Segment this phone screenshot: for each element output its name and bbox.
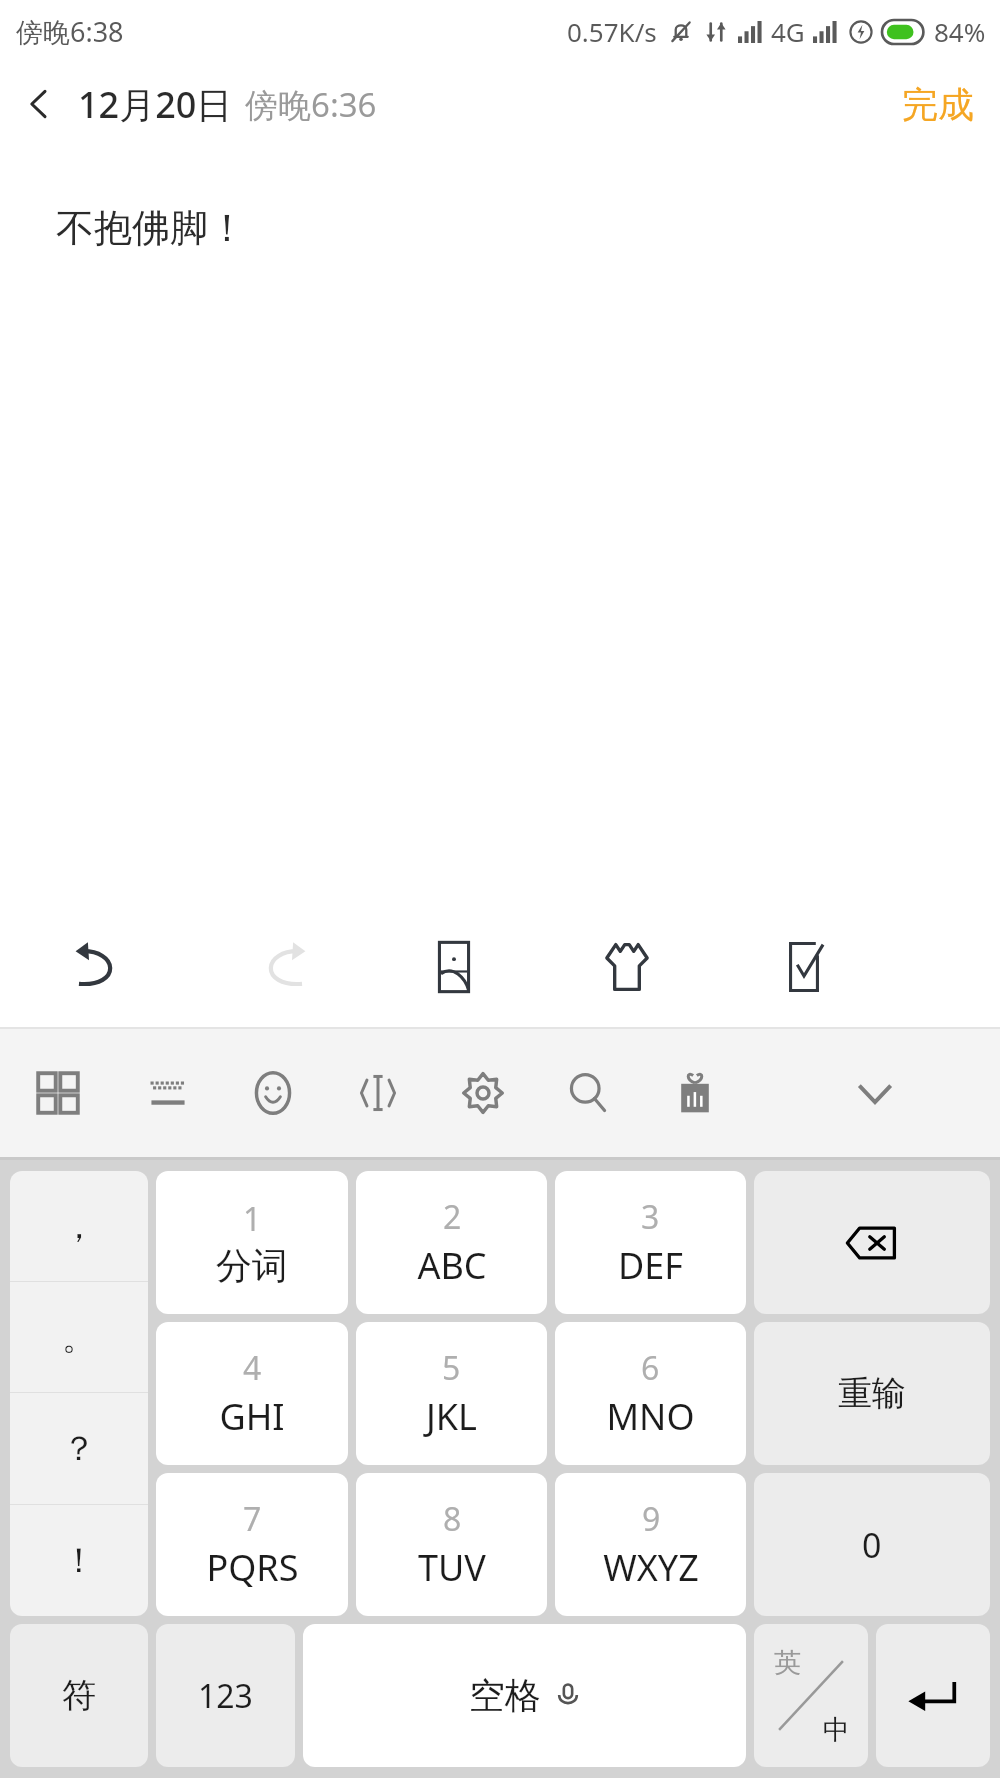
button[interactable]: 完成: [876, 72, 1000, 137]
staticText: 傍晚6:38: [16, 13, 124, 50]
button[interactable]: 5: [356, 1322, 547, 1465]
button[interactable]: Switch language: [754, 1624, 868, 1767]
button[interactable]: Search: [535, 1029, 640, 1157]
staticText: 0.57K/s: [567, 14, 657, 49]
button[interactable]: Checklist: [715, 907, 893, 1027]
button[interactable]: Backspace: [754, 1171, 990, 1314]
staticText: 中: [823, 1713, 850, 1747]
button[interactable]: 123: [156, 1624, 295, 1767]
staticText: 123: [198, 1674, 253, 1718]
staticText: PQRS: [206, 1543, 299, 1592]
staticText: ！: [62, 1539, 96, 1582]
button[interactable]: Gifts: [640, 1029, 750, 1157]
staticText: 7: [243, 1497, 262, 1541]
button[interactable]: 0: [754, 1473, 990, 1616]
button[interactable]: Redo: [195, 907, 370, 1027]
button[interactable]: 1: [156, 1171, 348, 1314]
button[interactable]: Settings: [430, 1029, 535, 1157]
staticText: ABC: [417, 1241, 487, 1290]
staticText: 空格: [469, 1673, 541, 1718]
button[interactable]: 2: [356, 1171, 547, 1314]
staticText: 英: [774, 1646, 801, 1680]
staticText: 2: [443, 1195, 462, 1239]
button[interactable]: 符: [10, 1624, 148, 1767]
button[interactable]: Enter: [876, 1624, 990, 1767]
staticText: 3: [641, 1195, 660, 1239]
staticText: 8: [443, 1497, 462, 1541]
button[interactable]: 6: [555, 1322, 746, 1465]
button[interactable]: Panels: [0, 1029, 115, 1157]
button[interactable]: 8: [356, 1473, 547, 1616]
staticText: 6: [641, 1346, 660, 1390]
staticText: ？: [62, 1427, 96, 1470]
staticText: GHI: [219, 1392, 285, 1441]
staticText: 分词: [216, 1243, 288, 1288]
staticText: TUV: [418, 1543, 486, 1592]
button[interactable]: Style: [538, 907, 715, 1027]
staticText: 重输: [838, 1372, 906, 1415]
button[interactable]: 3: [555, 1171, 746, 1314]
button[interactable]: 7: [156, 1473, 348, 1616]
staticText: 4G: [771, 14, 805, 49]
button[interactable]: 不抱佛脚！: [0, 146, 1000, 907]
staticText: 84%: [934, 14, 986, 49]
staticText: 。: [62, 1316, 96, 1359]
staticText: WXYZ: [603, 1543, 699, 1592]
button[interactable]: Move cursor: [325, 1029, 430, 1157]
staticText: JKL: [426, 1392, 477, 1441]
staticText: 不抱佛脚！: [56, 204, 246, 252]
button[interactable]: 空格: [303, 1624, 746, 1767]
staticText: 1: [243, 1197, 262, 1241]
staticText: DEF: [618, 1241, 683, 1290]
staticText: 符: [62, 1674, 96, 1717]
button[interactable]: Undo: [0, 907, 195, 1027]
button[interactable]: 4: [156, 1322, 348, 1465]
staticText: 4: [243, 1346, 262, 1390]
staticText: 5: [442, 1346, 461, 1390]
button[interactable]: Keyboard layout: [115, 1029, 220, 1157]
staticText: 9: [642, 1497, 661, 1541]
staticText: ，: [62, 1205, 96, 1248]
staticText: 傍晚6:36: [245, 82, 377, 127]
staticText: 12月20日: [78, 80, 233, 129]
staticText: 完成: [902, 82, 974, 127]
button[interactable]: 重输: [754, 1322, 990, 1465]
button[interactable]: ？: [10, 1393, 148, 1504]
button[interactable]: ！: [10, 1505, 148, 1616]
staticText: 0: [862, 1522, 882, 1568]
staticText: MNO: [606, 1392, 695, 1441]
button[interactable]: ，: [10, 1171, 148, 1281]
button[interactable]: 。: [10, 1282, 148, 1392]
button[interactable]: Emoji: [220, 1029, 325, 1157]
button[interactable]: Back: [0, 65, 78, 143]
button[interactable]: Insert image: [370, 907, 538, 1027]
button[interactable]: Hide keyboard: [750, 1029, 1000, 1157]
button[interactable]: 9: [555, 1473, 746, 1616]
